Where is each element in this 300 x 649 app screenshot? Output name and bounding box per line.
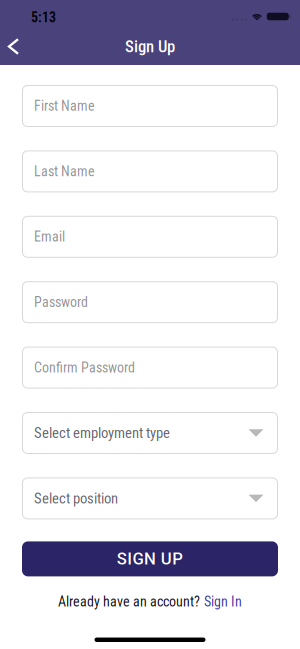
staticText: Already have an account?	[58, 593, 200, 610]
staticText: Select employment type	[34, 424, 170, 442]
button[interactable]: Last Name	[22, 150, 278, 192]
button[interactable]: Password	[22, 281, 278, 323]
button[interactable]: Select position	[22, 477, 278, 519]
staticText: Sign In	[204, 593, 242, 610]
button[interactable]: SIGN UP	[22, 541, 278, 576]
staticText: Email	[34, 229, 65, 245]
button[interactable]: First Name	[22, 85, 278, 127]
staticText: SIGN UP	[117, 549, 183, 569]
staticText: Select position	[34, 490, 118, 507]
staticText: Sign Up	[125, 37, 175, 56]
staticText: 5:13	[31, 9, 56, 26]
button[interactable]: Confirm Password	[22, 347, 278, 389]
button[interactable]: Email	[22, 216, 278, 258]
staticText: Confirm Password	[34, 359, 135, 376]
staticText: First Name	[34, 98, 95, 114]
button[interactable]: Back	[0, 31, 30, 62]
staticText: Last Name	[34, 163, 95, 180]
button[interactable]: Sign In	[204, 593, 242, 610]
button[interactable]: Select employment type	[22, 412, 278, 454]
staticText: Password	[34, 294, 88, 310]
